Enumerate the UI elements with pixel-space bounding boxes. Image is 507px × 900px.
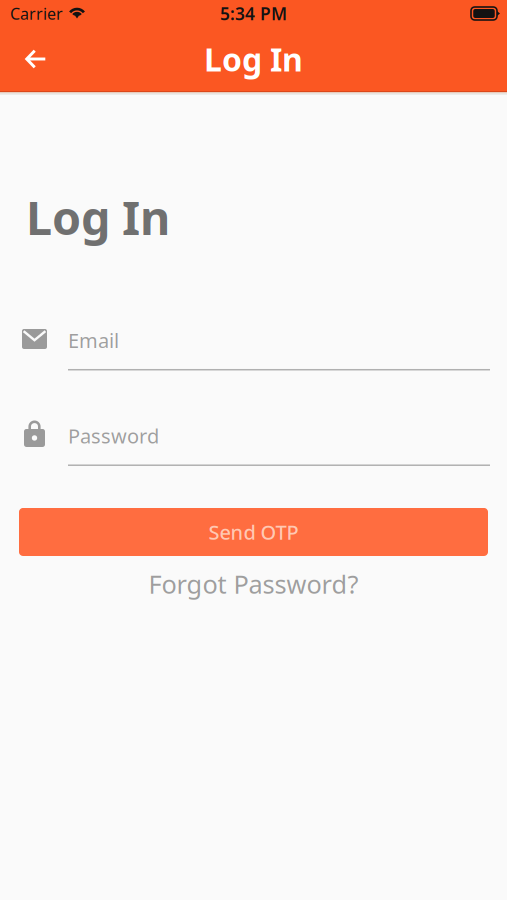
staticText: Log In	[26, 186, 170, 248]
button[interactable]: Forgot Password?	[0, 569, 507, 599]
staticText: Email	[68, 327, 119, 354]
staticText: Carrier	[10, 3, 63, 24]
staticText: Log In	[204, 38, 303, 80]
button[interactable]: Back	[13, 36, 59, 82]
staticText: Password	[68, 422, 159, 449]
button[interactable]: Send OTP	[19, 508, 488, 556]
staticText: Forgot Password?	[148, 567, 358, 601]
staticText: 5:34 PM	[220, 2, 287, 25]
staticText: Send OTP	[208, 519, 298, 545]
